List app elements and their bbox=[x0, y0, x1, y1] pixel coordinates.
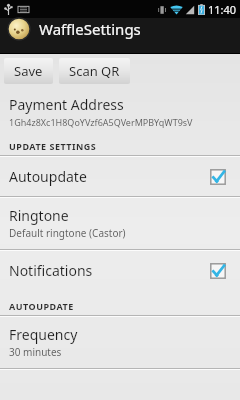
staticText: 30 minutes bbox=[9, 345, 62, 359]
button[interactable]: Notifications bbox=[0, 251, 240, 290]
button[interactable]: Scan QR bbox=[59, 58, 130, 84]
button[interactable]: Frequency bbox=[0, 317, 240, 368]
button[interactable]: Save bbox=[4, 58, 53, 84]
button[interactable]: Autoupdate bbox=[0, 157, 240, 196]
other: Toggle setting bbox=[208, 167, 228, 187]
staticText: Frequency bbox=[9, 325, 78, 344]
other: Toggle setting bbox=[208, 261, 228, 281]
staticText: Notifications bbox=[9, 261, 208, 280]
staticText: Payment Address bbox=[9, 95, 124, 114]
staticText: Save bbox=[14, 62, 43, 80]
button[interactable]: Payment Address bbox=[0, 88, 240, 136]
staticText: Autoupdate bbox=[9, 167, 208, 186]
staticText: Scan QR bbox=[69, 62, 120, 80]
staticText: Default ringtone (Castor) bbox=[9, 226, 126, 240]
staticText: WaffleSettings bbox=[39, 19, 141, 39]
button[interactable]: Ringtone bbox=[0, 198, 240, 249]
staticText: 1Gh4z8Xc1H8QoYVzf6A5QVerMPBYqWT9sV bbox=[9, 116, 193, 128]
staticText: 11:40 bbox=[208, 2, 237, 17]
staticText: AUTOUPDATE bbox=[9, 300, 74, 312]
staticText: UPDATE SETTINGS bbox=[9, 140, 97, 152]
staticText: Ringtone bbox=[9, 206, 69, 225]
